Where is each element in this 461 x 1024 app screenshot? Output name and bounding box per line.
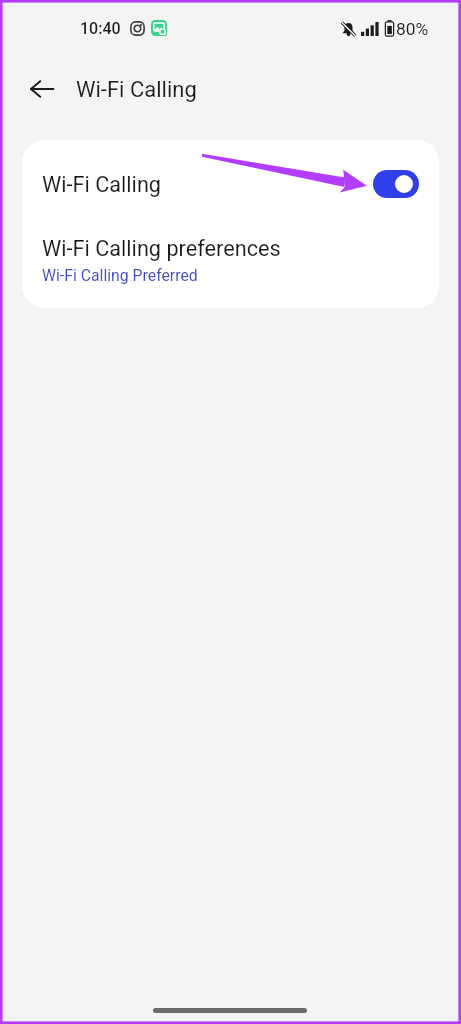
staticText: Wi-Fi Calling [42,172,373,197]
staticText: 10:40 [80,19,121,38]
staticText: Wi-Fi Calling [76,77,197,103]
staticText: 80% [396,19,429,39]
staticText: Wi-Fi Calling Preferred [42,266,198,285]
button[interactable]: Wi-Fi Calling preferences [22,228,439,308]
button[interactable]: Back [19,69,63,113]
button[interactable]: Wi-Fi Calling toggle [373,170,419,198]
button[interactable]: Wi-Fi Calling [22,140,439,228]
staticText: Wi-Fi Calling preferences [42,236,281,261]
